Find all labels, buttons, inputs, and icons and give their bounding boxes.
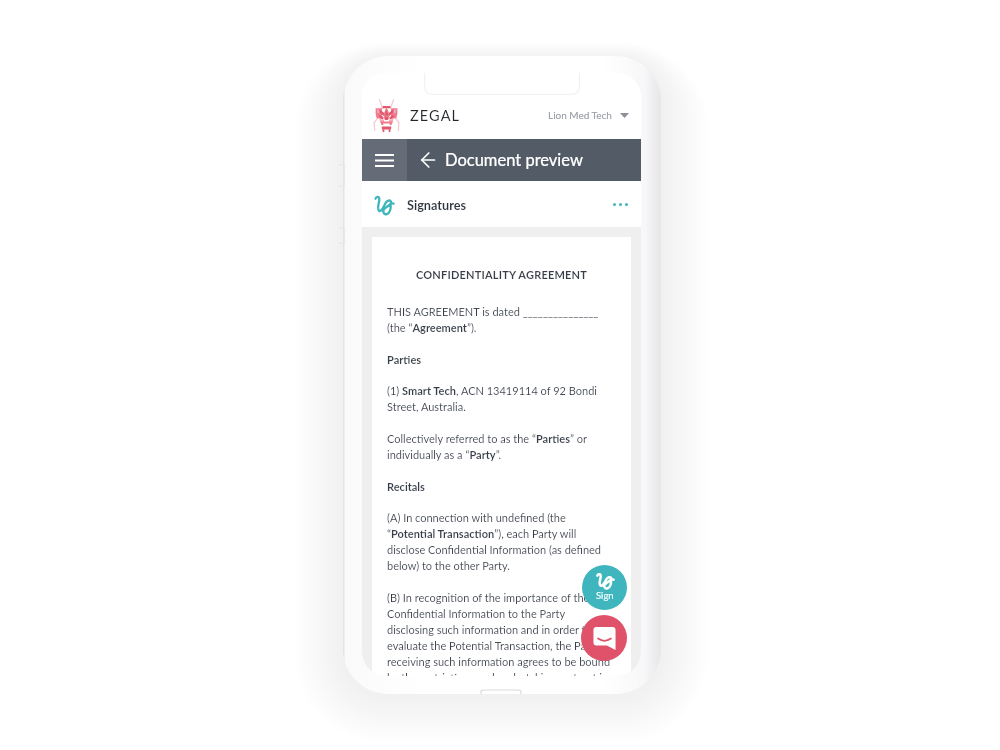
staticText: Document preview (445, 150, 583, 170)
staticText: (1) Smart Tech, ACN 13419114 of 92 Bondi… (387, 384, 616, 414)
staticText: Sign (596, 590, 614, 601)
staticText: (A) In connection with undefined (the “P… (387, 511, 616, 573)
button[interactable]: Lion Med Tech (543, 103, 634, 127)
button[interactable]: Back (417, 149, 439, 171)
staticText: Signatures (407, 197, 467, 212)
staticText: CONFIDENTIALITY AGREEMENT (387, 268, 616, 281)
button[interactable]: Signatures (362, 181, 641, 227)
staticText: Recitals (387, 480, 425, 493)
button[interactable]: Menu (362, 139, 407, 181)
staticText: Collectively referred to as the “Parties… (387, 432, 616, 462)
button[interactable]: More options (607, 191, 633, 217)
button[interactable]: Sign document (582, 565, 627, 610)
staticText: THIS AGREEMENT is dated _______________ … (387, 305, 599, 335)
staticText: Parties (387, 353, 422, 366)
staticText: (B) In recognition of the importance of … (387, 591, 611, 676)
staticText: Lion Med Tech (548, 109, 612, 121)
staticText: ZEGAL (410, 107, 461, 124)
button[interactable]: Chat (581, 615, 627, 661)
